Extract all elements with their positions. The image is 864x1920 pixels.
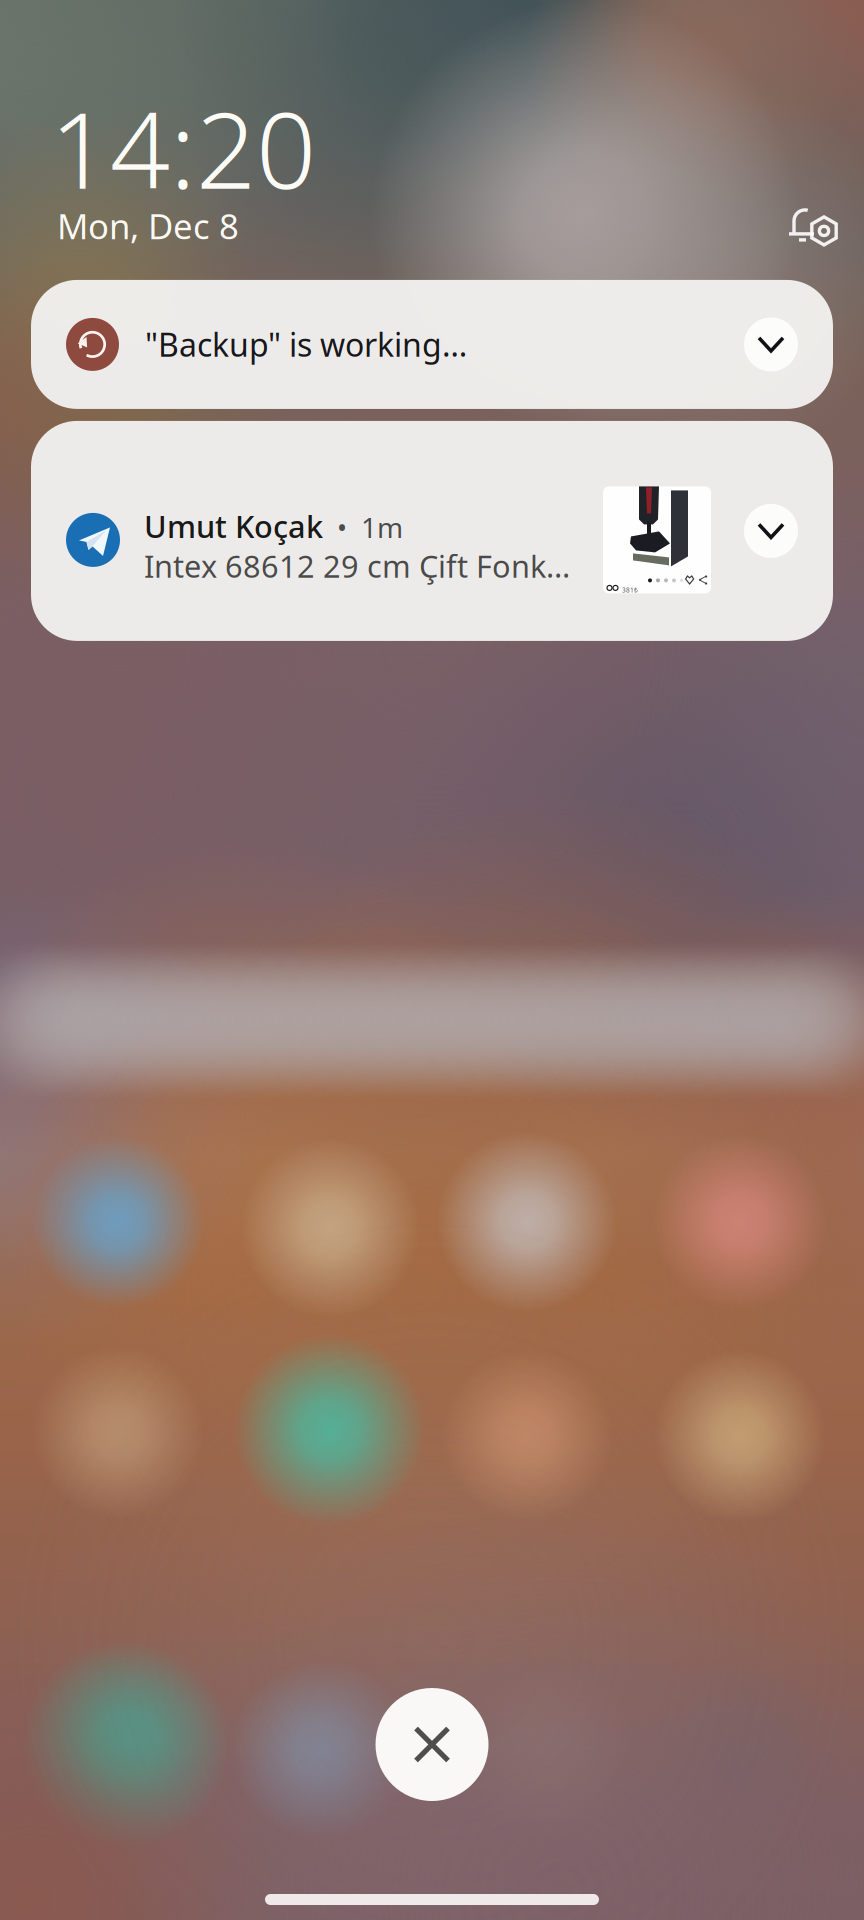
staticText: • [323, 510, 361, 545]
staticText: Intex 68612 29 cm Çift Fonk… [144, 545, 570, 586]
staticText: 381₺ [622, 585, 638, 594]
button[interactable]: "Backup" is working… [31, 280, 833, 409]
staticText: 14:20 [50, 78, 316, 218]
button[interactable]: Clear all notifications [375, 1688, 488, 1801]
staticText: Mon, Dec 8 [57, 203, 239, 249]
button[interactable]: Notification settings [788, 201, 864, 249]
staticText: "Backup" is working… [145, 323, 467, 366]
button[interactable]: Umut Koçak [31, 421, 833, 641]
staticText: Umut Koçak [144, 506, 323, 546]
staticText: 1m [361, 508, 403, 546]
